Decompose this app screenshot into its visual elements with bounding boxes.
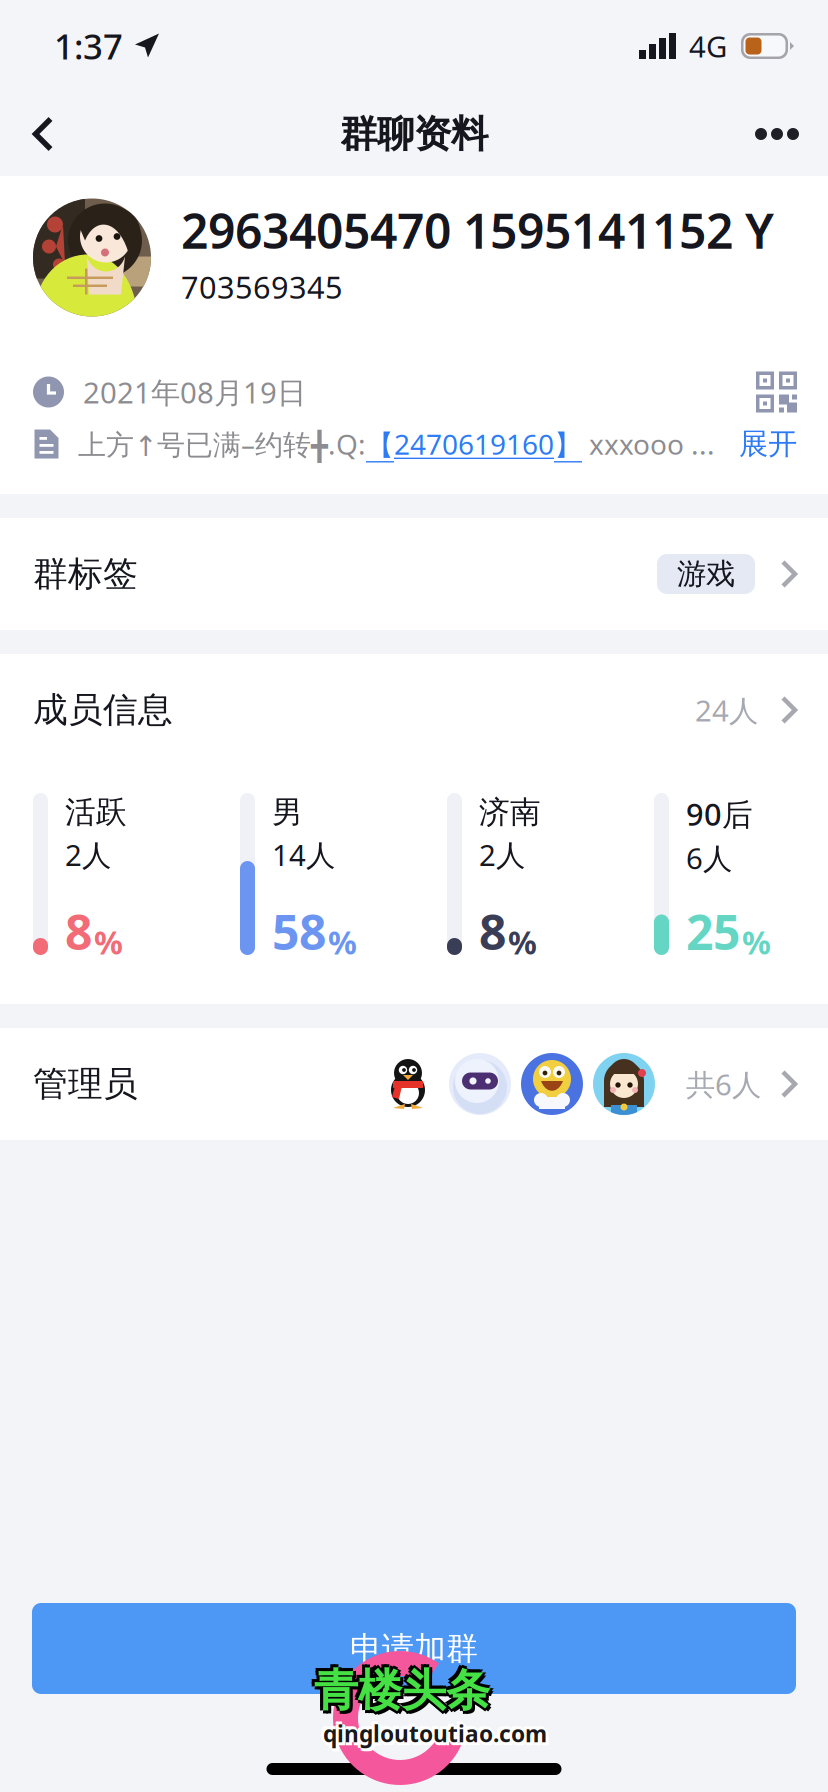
- staticText: 共6人: [686, 1064, 761, 1104]
- staticText: 群聊资料: [340, 110, 488, 157]
- button[interactable]: Back: [0, 92, 86, 176]
- staticText: 2人: [65, 835, 111, 875]
- staticText: qingloutoutiao.com: [320, 1715, 544, 1746]
- staticText: qingloutoutiao.com: [323, 1721, 547, 1752]
- staticText: 管理员: [33, 1062, 138, 1106]
- staticText: qingloutoutiao.com: [326, 1721, 550, 1752]
- staticText: 申请加群: [350, 1628, 478, 1669]
- staticText: 青楼头条: [314, 1666, 490, 1721]
- staticText: 青楼头条: [317, 1666, 493, 1721]
- staticText: 8: [479, 899, 506, 964]
- staticText: 6人: [686, 838, 732, 878]
- staticText: 青楼头条: [311, 1663, 487, 1718]
- staticText: 8: [65, 899, 92, 964]
- staticText: 2人: [479, 835, 525, 875]
- button[interactable]: 展开: [739, 425, 797, 462]
- staticText: 青楼头条: [314, 1663, 490, 1718]
- staticText: 济南: [479, 793, 541, 832]
- staticText: 展开: [739, 425, 797, 462]
- staticText: xxxooo ...: [582, 425, 715, 463]
- staticText: 游戏: [677, 555, 735, 592]
- staticText: qingloutoutiao.com: [326, 1718, 550, 1749]
- staticText: 2963405470 1595141152 Y: [181, 197, 774, 263]
- staticText: 【2470619160】: [366, 425, 582, 463]
- button[interactable]: 申请加群: [32, 1603, 796, 1694]
- button[interactable]: Group QR code: [756, 371, 797, 412]
- staticText: qingloutoutiao.com: [323, 1718, 547, 1749]
- staticText: %: [328, 920, 357, 964]
- staticText: 25: [686, 899, 740, 964]
- staticText: 703569345: [181, 266, 343, 308]
- staticText: 90后: [686, 793, 753, 835]
- staticText: 成员信息: [33, 688, 173, 732]
- staticText: 上方↑号已满–约转╋.Q:: [78, 425, 366, 463]
- staticText: qingloutoutiao.com: [320, 1718, 544, 1749]
- staticText: 58: [272, 899, 326, 964]
- button[interactable]: 管理员: [0, 1028, 828, 1140]
- staticText: 群标签: [33, 552, 138, 596]
- staticText: 4G: [689, 26, 727, 66]
- button[interactable]: More options: [737, 92, 817, 176]
- staticText: 14人: [272, 835, 335, 875]
- staticText: %: [742, 920, 771, 964]
- staticText: 24人: [695, 690, 758, 730]
- staticText: %: [94, 920, 123, 964]
- staticText: 青楼头条: [317, 1663, 493, 1718]
- staticText: %: [508, 920, 537, 964]
- staticText: 青楼头条: [311, 1660, 487, 1715]
- staticText: 男: [272, 793, 303, 832]
- staticText: 活跃: [65, 793, 127, 832]
- staticText: 1:37: [54, 22, 123, 70]
- button[interactable]: 群标签: [0, 518, 828, 630]
- staticText: 2021年08月19日: [83, 372, 306, 412]
- staticText: 青楼头条: [314, 1660, 490, 1715]
- button[interactable]: 成员信息: [0, 654, 828, 766]
- staticText: qingloutoutiao.com: [323, 1715, 547, 1746]
